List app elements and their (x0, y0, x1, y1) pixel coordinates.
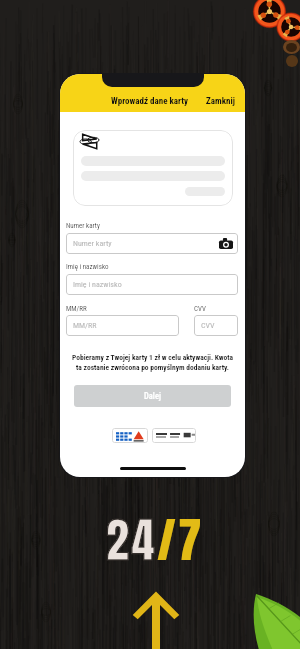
staticText: Dalej (144, 391, 161, 401)
button[interactable]: Zamknij (206, 96, 235, 107)
staticText: CVV (201, 321, 215, 330)
staticText: Imię i nazwisko (73, 280, 122, 289)
staticText: Imię i nazwisko (66, 263, 109, 271)
button[interactable]: Wprowadź dane karty (111, 96, 189, 107)
staticText: 24 (106, 505, 157, 567)
staticText: Pobieramy z Twojej karty 1 zł w celu akt… (66, 353, 239, 371)
staticText: 24 (106, 505, 157, 567)
other: Scan card (219, 238, 233, 249)
button[interactable]: MM/RR (66, 315, 179, 336)
staticText: Numer karty (66, 222, 100, 230)
staticText: MM/RR (73, 321, 97, 330)
staticText: MM/RR (66, 305, 87, 313)
staticText: Numer karty (73, 239, 112, 248)
button[interactable]: Numer karty (66, 233, 238, 254)
staticText: Zamknij (206, 96, 235, 107)
button[interactable]: Imię i nazwisko (66, 274, 238, 295)
button[interactable]: CVV (194, 315, 238, 336)
staticText: CVV (194, 305, 206, 313)
staticText: /7 (157, 505, 204, 567)
button[interactable]: Dalej (74, 385, 231, 407)
staticText: Wprowadź dane karty (111, 96, 189, 107)
